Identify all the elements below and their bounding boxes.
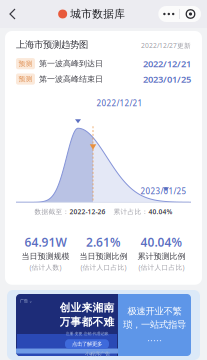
staticText: 小程序广告	[85, 351, 110, 357]
staticText: 预测	[18, 60, 32, 68]
staticText: 创业来湘南	[59, 301, 114, 314]
staticText: 2.61%	[86, 234, 121, 250]
staticText: 数据截至：	[34, 208, 69, 216]
staticText: 2022/12/27更新	[141, 41, 191, 50]
button[interactable]: More options	[158, 6, 207, 22]
staticText: 累计占比：	[105, 208, 148, 216]
staticText: (估计人数)	[29, 263, 61, 272]
staticText: 点击了解更多	[72, 341, 102, 347]
button[interactable]: 创业来湘南	[0, 290, 207, 360]
staticText: 64.91W	[24, 234, 66, 250]
staticText: 40.04%	[148, 207, 172, 216]
staticText: 2023/01/25	[143, 73, 191, 85]
staticText: 城市数据库	[70, 7, 125, 20]
staticText: 琐，一站式指导	[123, 319, 186, 330]
staticText: 广告 ⌄	[20, 298, 32, 303]
staticText: 当日预测规模	[21, 251, 69, 261]
button[interactable]: Back	[0, 4, 25, 24]
staticText: 当日预测比例	[79, 251, 127, 261]
staticText: • • • • •	[147, 337, 161, 344]
staticText: 注册·变更·注销·代理记账	[65, 331, 108, 336]
staticText: 2023/01/25	[140, 186, 186, 196]
staticText: 上海市预测趋势图	[16, 39, 88, 50]
staticText: (估计人口占比)	[80, 263, 126, 272]
staticText: 第一波高峰结束日	[39, 74, 103, 84]
staticText: 2022/12/21	[143, 57, 191, 70]
staticText: 第一波高峰到达日	[39, 59, 103, 68]
staticText: 极速开业不繁	[127, 305, 181, 317]
staticText: 40.04%	[140, 234, 182, 250]
staticText: 预测	[18, 75, 32, 83]
staticText: 2022/12/21	[96, 98, 142, 108]
staticText: (估计人口占比)	[138, 263, 184, 272]
staticText: 2022-12-26	[69, 207, 105, 216]
staticText: 累计预测比例	[137, 251, 185, 261]
staticText: 万事都不难	[59, 315, 114, 328]
